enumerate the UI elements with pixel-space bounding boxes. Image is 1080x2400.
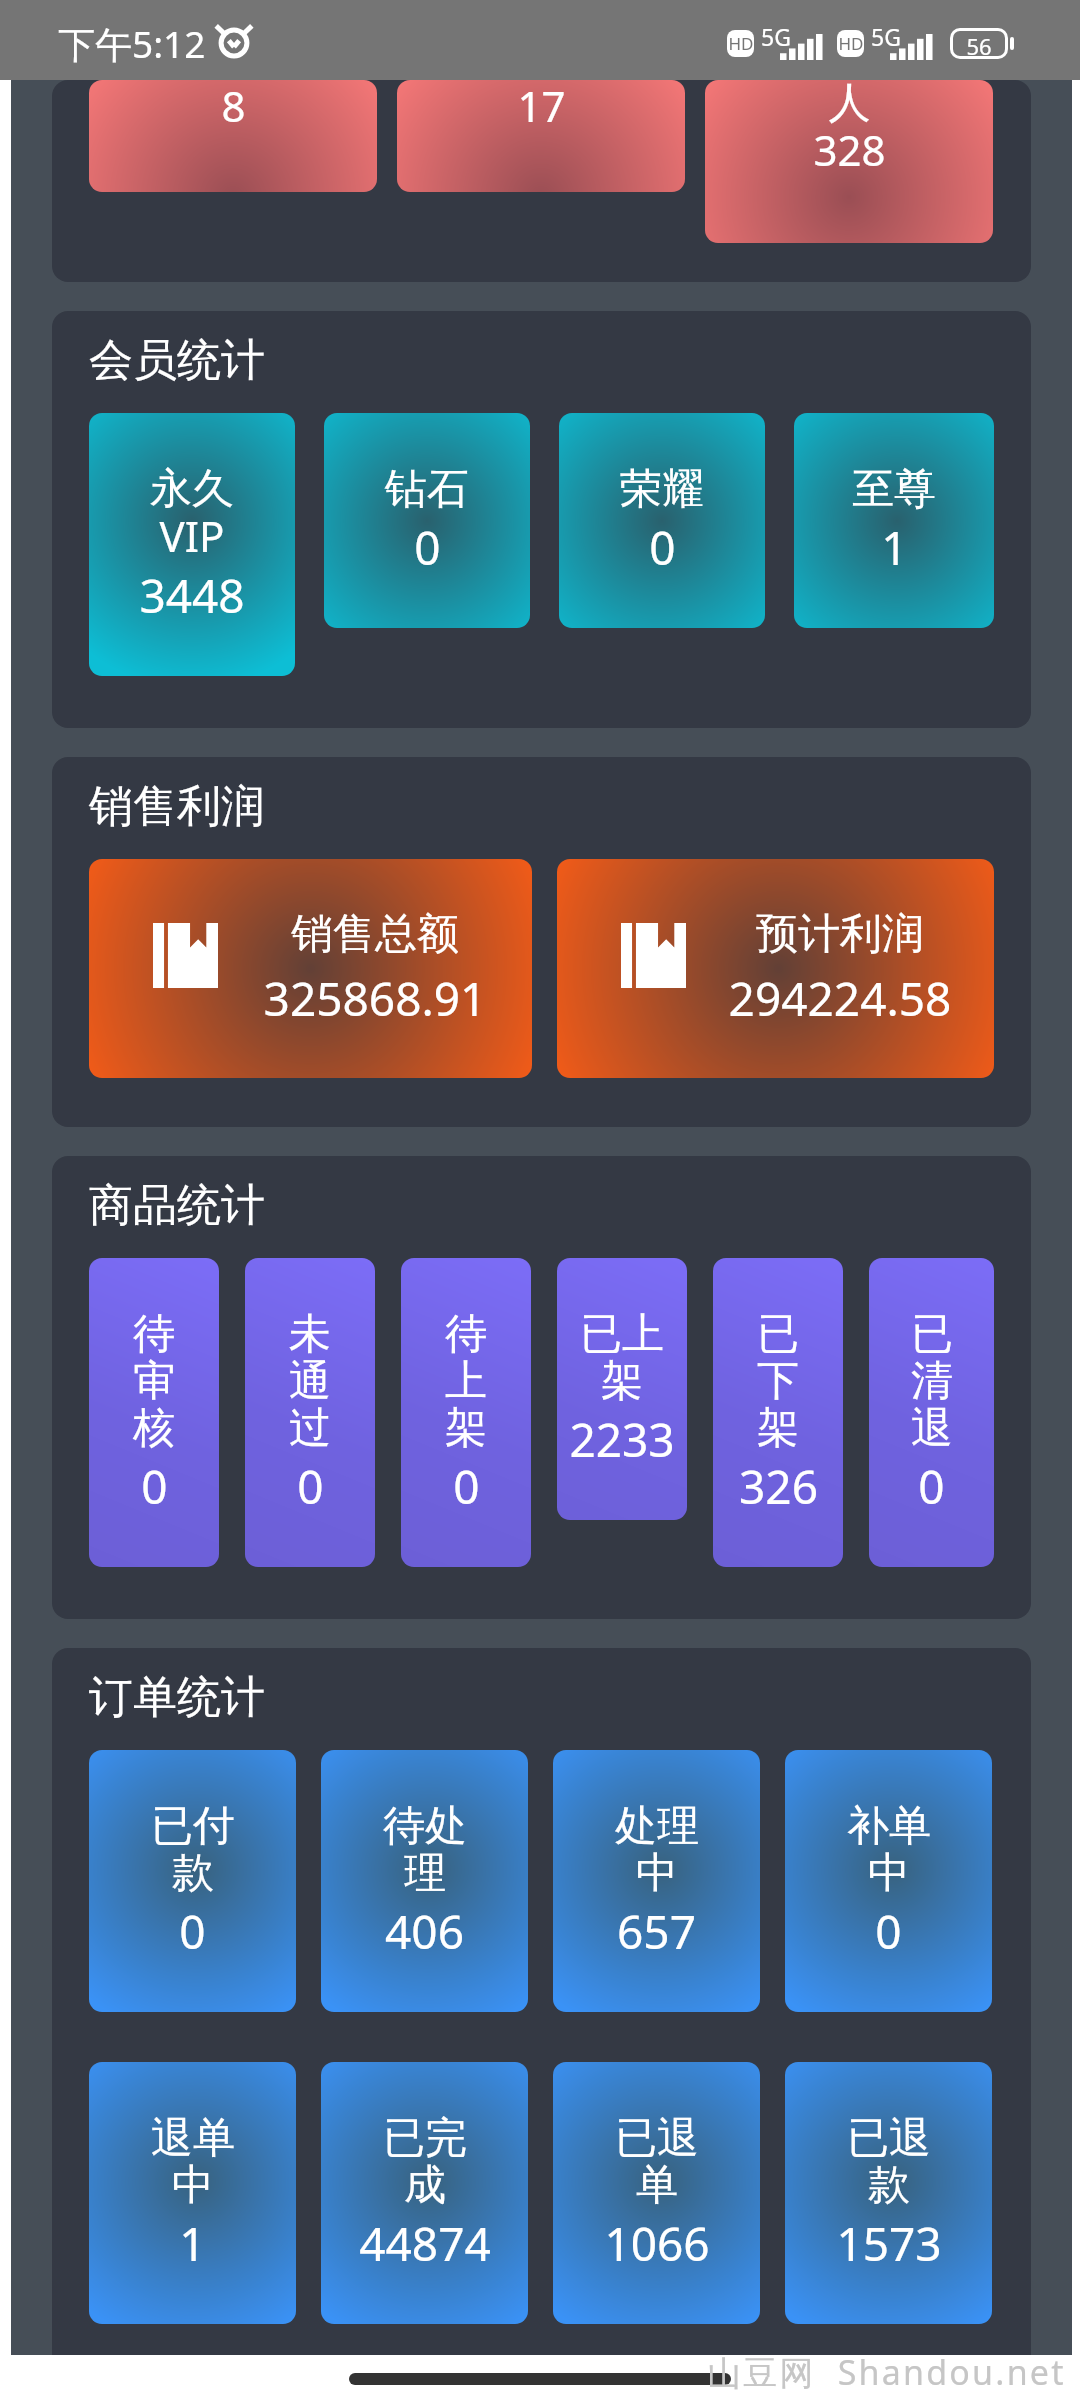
staticText: 商品统计 bbox=[89, 1178, 265, 1233]
staticText: 已付 款 bbox=[151, 1800, 235, 1900]
staticText: 退单 中 bbox=[151, 2112, 235, 2212]
staticText: HD bbox=[728, 32, 754, 55]
button[interactable]: 钻石 bbox=[324, 413, 530, 628]
staticText: 已 清 退 bbox=[911, 1308, 953, 1455]
staticText: 406 bbox=[385, 1900, 464, 1963]
staticText: 2233 bbox=[569, 1408, 675, 1471]
button[interactable]: 8 bbox=[89, 80, 377, 192]
staticText: 0 bbox=[918, 1455, 945, 1518]
button[interactable]: 人 328 bbox=[705, 80, 993, 243]
staticText: 0 bbox=[414, 516, 441, 579]
staticText: 待 审 核 bbox=[133, 1308, 175, 1455]
staticText: 预计利润 bbox=[686, 908, 994, 961]
staticText: 56 bbox=[966, 31, 992, 56]
button[interactable]: 待处 理 bbox=[321, 1750, 528, 2012]
staticText: 永久 VIP bbox=[150, 463, 234, 564]
staticText: 294224.58 bbox=[686, 967, 994, 1030]
button[interactable]: 销售总额 bbox=[89, 859, 532, 1078]
staticText: 0 bbox=[875, 1900, 902, 1963]
staticText: 1573 bbox=[836, 2212, 942, 2275]
staticText: 0 bbox=[649, 516, 676, 579]
button[interactable]: 17 bbox=[397, 80, 685, 192]
button[interactable]: 永久 VIP bbox=[89, 413, 295, 676]
staticText: 未 通 过 bbox=[289, 1308, 331, 1455]
staticText: 销售总额 bbox=[218, 908, 532, 961]
staticText: 人 328 bbox=[813, 80, 886, 178]
button[interactable]: 已 下 架 bbox=[713, 1258, 843, 1567]
staticText: 0 bbox=[297, 1455, 324, 1518]
staticText: 待处 理 bbox=[383, 1800, 467, 1900]
staticText: 5G bbox=[761, 21, 791, 52]
staticText: 3448 bbox=[139, 564, 245, 627]
button[interactable]: 已退 款 bbox=[785, 2062, 992, 2324]
staticText: 1066 bbox=[604, 2212, 710, 2275]
button[interactable]: 补单 中 bbox=[785, 1750, 992, 2012]
button[interactable]: 已上 架 bbox=[557, 1258, 687, 1520]
staticText: 已 下 架 bbox=[757, 1308, 799, 1455]
staticText: 325868.91 bbox=[218, 967, 532, 1030]
staticText: 已完 成 bbox=[383, 2112, 467, 2212]
button[interactable]: 荣耀 bbox=[559, 413, 765, 628]
other: Home bbox=[0, 2355, 1080, 2400]
staticText: 已退 款 bbox=[847, 2112, 931, 2212]
staticText: 处理 中 bbox=[615, 1800, 699, 1900]
staticText: 326 bbox=[739, 1455, 818, 1518]
staticText: 1 bbox=[881, 516, 908, 579]
button[interactable]: 处理 中 bbox=[553, 1750, 760, 2012]
button[interactable]: 已付 款 bbox=[89, 1750, 296, 2012]
staticText: 0 bbox=[179, 1900, 206, 1963]
staticText: 订单统计 bbox=[89, 1670, 265, 1725]
staticText: 5G bbox=[871, 21, 901, 52]
staticText: 8 bbox=[221, 80, 246, 134]
button[interactable]: 已 清 退 bbox=[869, 1258, 994, 1567]
button[interactable]: 预计利润 bbox=[557, 859, 994, 1078]
staticText: 至尊 bbox=[852, 463, 936, 516]
staticText: 44874 bbox=[359, 2212, 491, 2275]
staticText: 钻石 bbox=[385, 463, 469, 516]
staticText: 待 上 架 bbox=[445, 1308, 487, 1455]
staticText: 下午5:12 bbox=[58, 18, 206, 69]
button[interactable]: 已退 单 bbox=[553, 2062, 760, 2324]
staticText: 会员统计 bbox=[89, 333, 265, 388]
staticText: HD bbox=[838, 32, 864, 55]
staticText: 657 bbox=[617, 1900, 696, 1963]
staticText: 荣耀 bbox=[620, 463, 704, 516]
button[interactable]: 退单 中 bbox=[89, 2062, 296, 2324]
staticText: 已上 架 bbox=[580, 1308, 664, 1408]
staticText: 补单 中 bbox=[847, 1800, 931, 1900]
other: Alarm bbox=[215, 24, 253, 62]
button[interactable]: 未 通 过 bbox=[245, 1258, 375, 1567]
staticText: 山豆网 Shandou.net bbox=[707, 2349, 1066, 2394]
staticText: 0 bbox=[141, 1455, 168, 1518]
button[interactable]: 待 审 核 bbox=[89, 1258, 219, 1567]
staticText: 1 bbox=[179, 2212, 206, 2275]
staticText: 销售利润 bbox=[89, 779, 265, 834]
staticText: 已退 单 bbox=[615, 2112, 699, 2212]
staticText: 0 bbox=[453, 1455, 480, 1518]
button[interactable]: 待 上 架 bbox=[401, 1258, 531, 1567]
staticText: 17 bbox=[517, 80, 566, 134]
button[interactable]: 已完 成 bbox=[321, 2062, 528, 2324]
button[interactable]: 至尊 bbox=[794, 413, 994, 628]
